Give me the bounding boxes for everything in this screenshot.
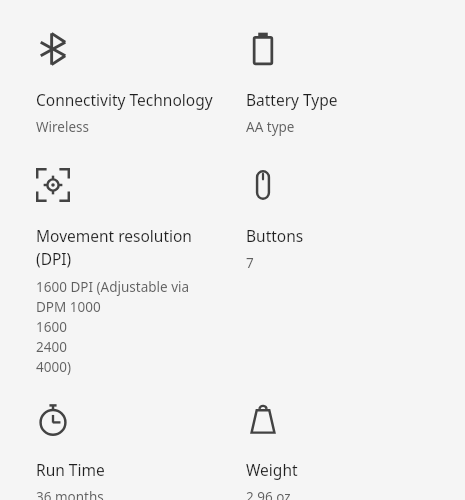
staticText: Run Time (36, 458, 105, 481)
other: Movement resolution DPI (36, 168, 70, 202)
staticText: Battery Type (246, 88, 338, 111)
staticText: AA type (246, 116, 295, 136)
other: Run time (36, 402, 70, 436)
staticText: 7 (246, 252, 254, 272)
button[interactable]: Movement resolution DPI (36, 168, 232, 376)
button[interactable]: Battery (246, 32, 436, 136)
staticText: Wireless (36, 116, 89, 136)
staticText: 1600 DPI (Adjustable via DPM 1000 1600 2… (36, 276, 190, 376)
other: Battery (246, 32, 280, 66)
button[interactable]: Weight (246, 402, 436, 500)
other: Mouse buttons (246, 168, 280, 202)
staticText: Connectivity Technology (36, 88, 213, 111)
staticText: 2.96 oz (246, 486, 291, 500)
button[interactable]: Mouse buttons (246, 168, 436, 272)
other: Weight (246, 402, 280, 436)
button[interactable]: Bluetooth (36, 32, 232, 136)
staticText: Weight (246, 458, 298, 481)
staticText: Buttons (246, 224, 304, 247)
button[interactable]: Run time (36, 402, 232, 500)
staticText: 36 months (36, 486, 104, 500)
staticText: Movement resolution (DPI) (36, 224, 192, 270)
other: Bluetooth (36, 32, 70, 66)
